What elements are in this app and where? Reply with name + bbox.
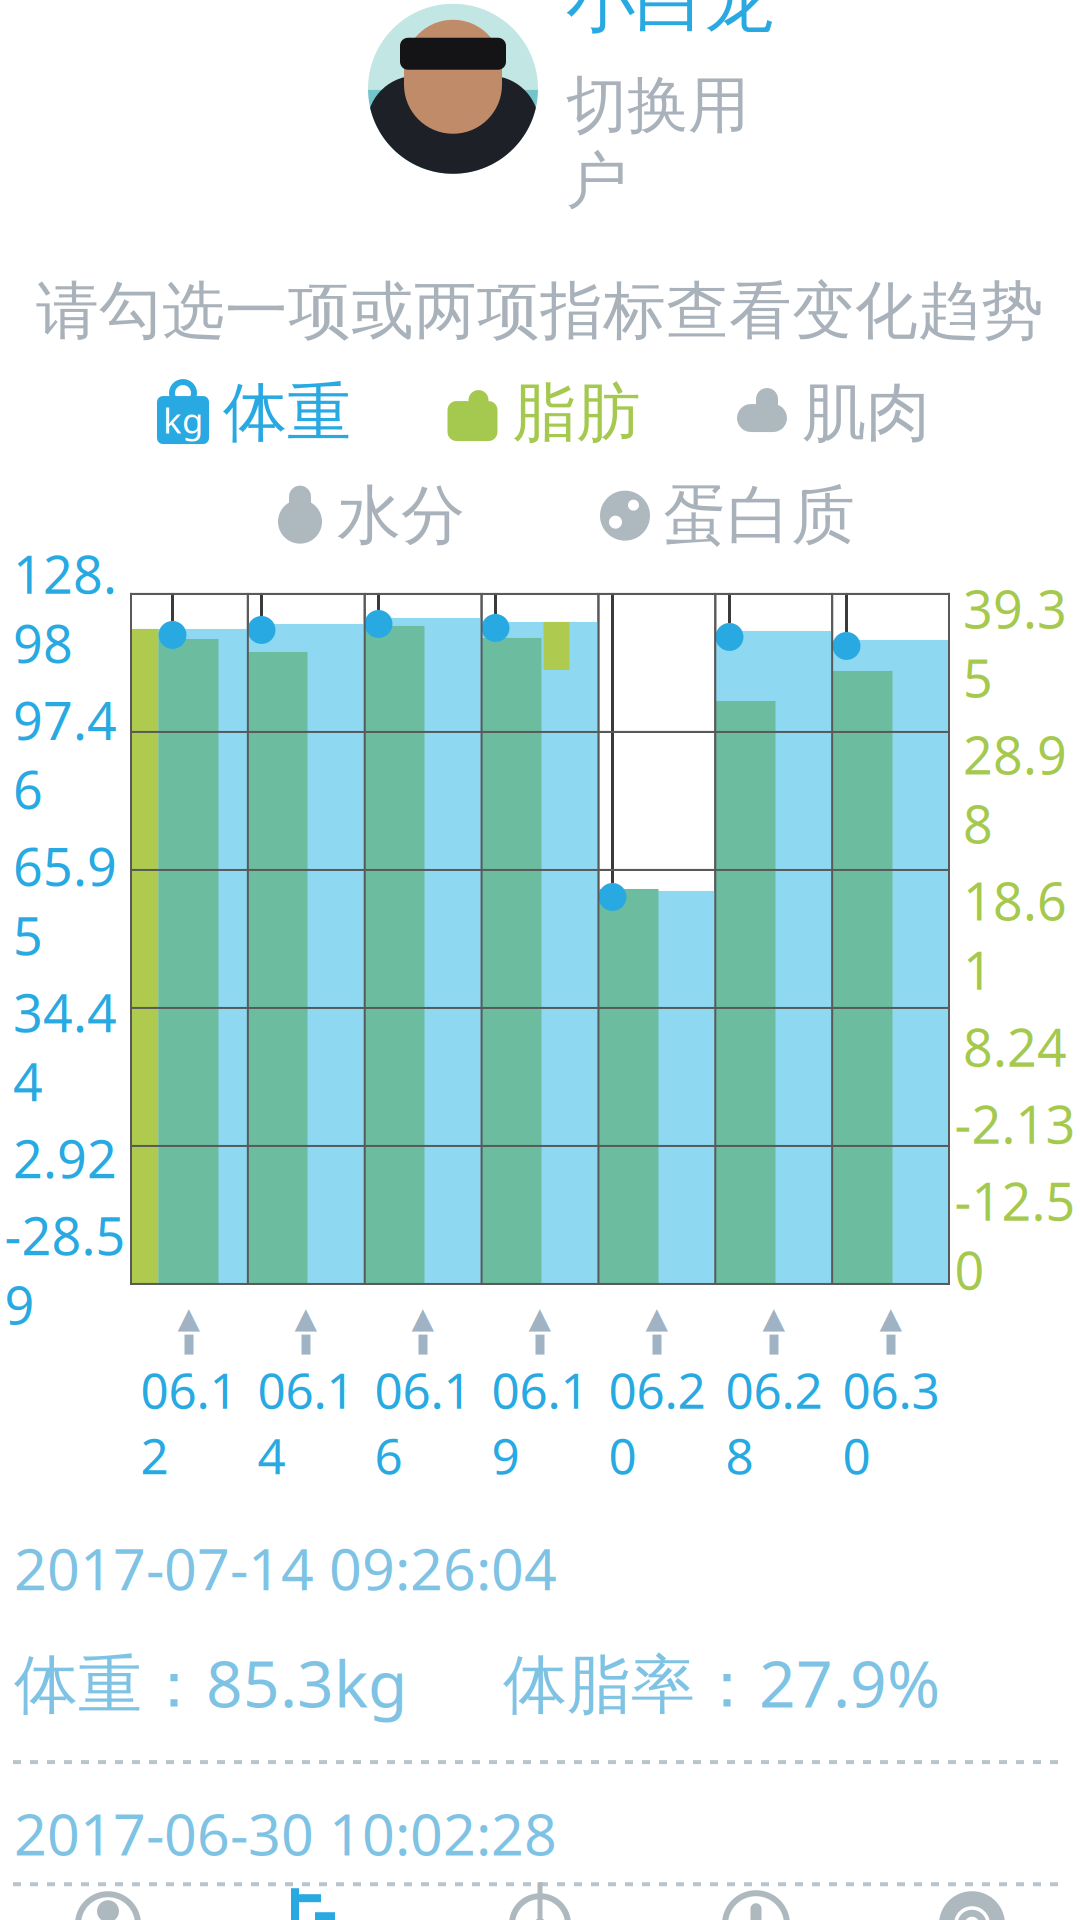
staticText: 体重：85.3kg — [14, 1640, 407, 1725]
staticText: -2.13 — [954, 1089, 1075, 1158]
button[interactable]: 设置 — [864, 1871, 1080, 1920]
staticText: 06.12 — [140, 1357, 237, 1488]
staticText: ▲ — [762, 1301, 785, 1335]
staticText: 2.92 — [13, 1124, 117, 1193]
staticText: 06.30 — [842, 1357, 939, 1488]
staticText: 97.46 — [13, 685, 117, 823]
staticText: 18.61 — [963, 866, 1067, 1004]
button[interactable]: 蛋白质 — [599, 476, 855, 555]
button[interactable]: 目标 — [432, 1867, 648, 1920]
staticText: ▲ — [177, 1301, 200, 1335]
staticText: -28.59 — [4, 1201, 125, 1339]
staticText: 切换用户 — [566, 68, 749, 219]
button[interactable]: 评测 — [0, 1870, 216, 1920]
button[interactable]: 脂肪 — [444, 374, 640, 452]
staticText: 体脂率：27.9% — [503, 1640, 940, 1725]
staticText: 体重 — [223, 374, 351, 452]
staticText: 请勾选一项或两项指标查看变化趋势 — [36, 273, 1044, 350]
staticText: ▲ — [411, 1301, 434, 1335]
staticText: 8.24 — [963, 1012, 1067, 1081]
staticText: 水分 — [337, 476, 465, 555]
button[interactable]: kg — [155, 374, 351, 452]
staticText: 脂肪 — [512, 374, 640, 452]
staticText: 39.35 — [963, 574, 1067, 712]
staticText: 06.14 — [257, 1357, 354, 1488]
button[interactable]: 2017-06-30 10:02:28 — [0, 1765, 1080, 1871]
staticText: 肌肉 — [802, 374, 930, 452]
staticText: 128.98 — [13, 539, 117, 677]
button[interactable]: 活动 — [648, 1870, 864, 1920]
staticText: ▲ — [528, 1301, 551, 1335]
button[interactable]: 趋势 — [216, 1872, 432, 1920]
staticText: 06.19 — [491, 1357, 588, 1488]
staticText: 34.44 — [13, 977, 117, 1116]
staticText: 2017-06-30 10:02:28 — [14, 1795, 557, 1871]
staticText: 65.95 — [13, 831, 117, 969]
staticText: 小白龙 — [566, 0, 773, 44]
staticText: 06.20 — [608, 1357, 705, 1488]
button[interactable]: 小白龙 — [0, 0, 1080, 179]
staticText: -12.50 — [954, 1166, 1075, 1304]
staticText: 06.28 — [725, 1357, 822, 1488]
staticText: kg — [163, 397, 203, 443]
button[interactable]: 肌肉 — [734, 374, 930, 452]
staticText: 蛋白质 — [663, 476, 855, 555]
button[interactable]: 水分 — [275, 476, 465, 555]
staticText: ▲ — [645, 1301, 668, 1335]
staticText: ▲ — [879, 1301, 902, 1335]
button[interactable]: 2017-07-14 09:26:04 — [0, 1530, 1080, 1725]
staticText: 2017-07-14 09:26:04 — [14, 1530, 557, 1606]
staticText: ▲ — [294, 1301, 317, 1335]
staticText: 06.16 — [374, 1357, 471, 1488]
staticText: 28.98 — [963, 720, 1067, 858]
